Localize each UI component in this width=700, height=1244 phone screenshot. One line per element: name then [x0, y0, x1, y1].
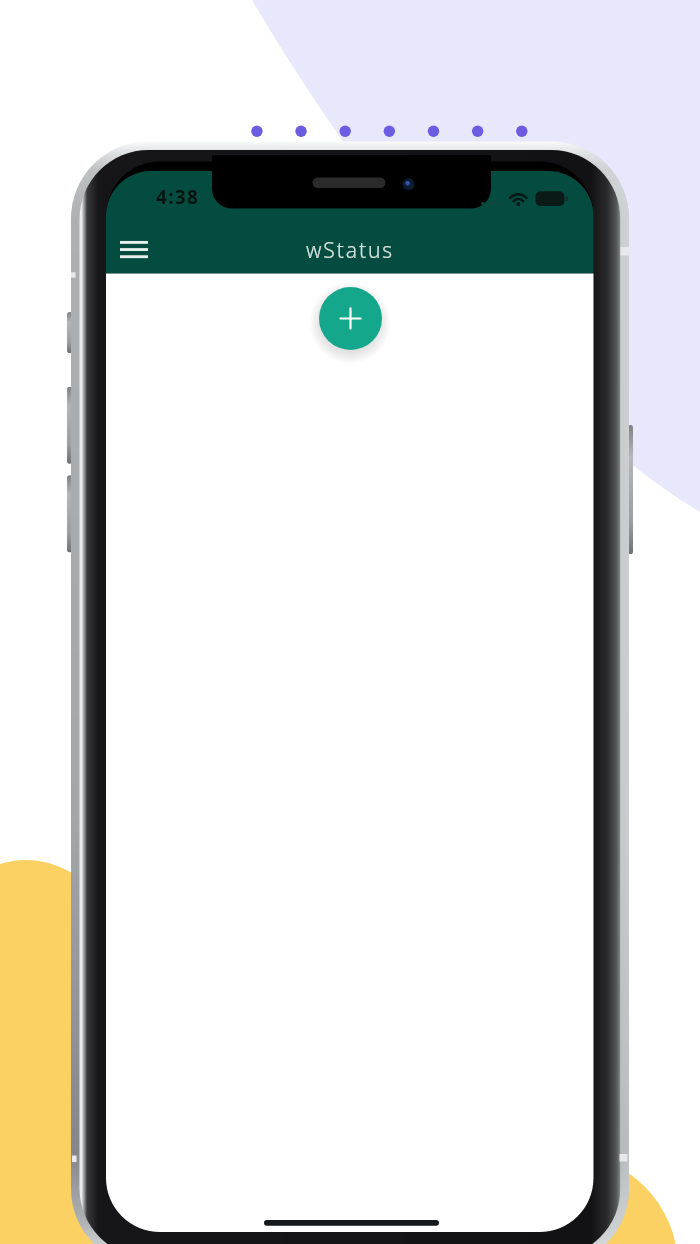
- staticText: 4:38: [156, 184, 200, 204]
- staticText: wStatus: [306, 236, 395, 265]
- button[interactable]: [319, 287, 382, 350]
- button[interactable]: [110, 236, 157, 264]
